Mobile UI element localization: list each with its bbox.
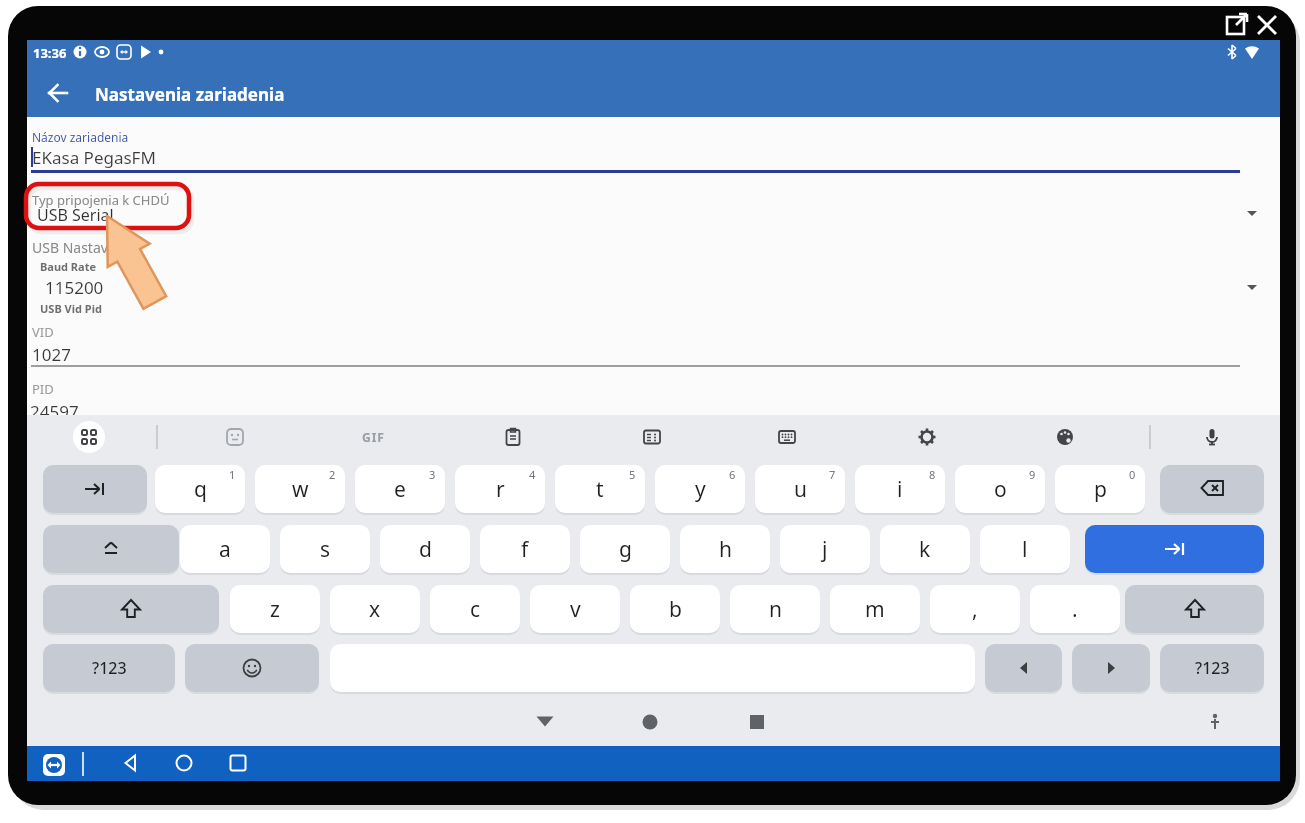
button[interactable]: q (155, 465, 245, 513)
button[interactable]: e (355, 465, 445, 513)
staticText: q (194, 475, 207, 504)
button[interactable]: o (955, 465, 1045, 513)
staticText: ?123 (1195, 657, 1230, 679)
button[interactable] (985, 644, 1062, 692)
staticText: GIF (362, 429, 385, 445)
button[interactable]: ?123 (1160, 644, 1264, 692)
button[interactable]: a (180, 525, 270, 573)
button[interactable] (168, 748, 200, 778)
staticText: c (470, 595, 481, 624)
staticText: . (1072, 595, 1078, 624)
button[interactable]: c (430, 585, 520, 633)
staticText: Typ pripojenia k CHDÚ (32, 191, 170, 209)
button[interactable]: . (1030, 585, 1120, 633)
button[interactable] (1085, 525, 1264, 573)
staticText: o (994, 475, 1007, 504)
staticText: r (496, 475, 505, 504)
staticText: Názov zariadenia (32, 129, 129, 145)
button[interactable]: x (330, 585, 420, 633)
button[interactable] (43, 525, 179, 573)
staticText: i (897, 475, 903, 504)
staticText: 9 (1029, 467, 1036, 482)
button[interactable] (1049, 421, 1081, 453)
staticText: VID (32, 323, 54, 341)
button[interactable]: v (530, 585, 620, 633)
button[interactable] (27, 270, 1253, 310)
staticText: e (394, 475, 406, 504)
staticText: , (972, 595, 978, 624)
button[interactable] (497, 421, 529, 453)
button[interactable]: p (1055, 465, 1145, 513)
button[interactable]: k (880, 525, 970, 573)
staticText: 13:36 (33, 44, 67, 62)
staticText: s (320, 535, 331, 564)
button[interactable]: g (580, 525, 670, 573)
button[interactable] (636, 421, 668, 453)
button[interactable] (27, 190, 1253, 235)
staticText: USB Serial (37, 204, 114, 226)
staticText: v (570, 595, 581, 624)
button[interactable] (73, 421, 105, 453)
staticText: 7 (829, 467, 836, 482)
staticText: 0 (1129, 467, 1136, 482)
staticText: h (719, 535, 732, 564)
button[interactable] (115, 748, 147, 778)
staticText: j (822, 535, 828, 564)
staticText: x (369, 595, 381, 624)
button[interactable]: z (230, 585, 320, 633)
button[interactable] (1125, 585, 1264, 633)
staticText: f (521, 535, 529, 564)
staticText: 4 (529, 467, 536, 482)
button[interactable] (43, 465, 147, 513)
staticText: z (270, 595, 280, 624)
button[interactable]: s (280, 525, 370, 573)
button[interactable]: ?123 (43, 644, 175, 692)
button[interactable] (43, 585, 219, 633)
button[interactable] (222, 748, 254, 778)
button[interactable] (527, 704, 563, 740)
staticText: 2 (329, 467, 336, 482)
staticText: 3 (429, 467, 436, 482)
button[interactable]: d (380, 525, 470, 573)
button[interactable] (185, 644, 319, 692)
staticText: 24597 (30, 400, 79, 423)
button[interactable]: w (255, 465, 345, 513)
staticText: Nastavenia zariadenia (95, 83, 285, 106)
staticText: b (669, 595, 682, 624)
button[interactable]: r (455, 465, 545, 513)
button[interactable] (632, 704, 668, 740)
staticText: Baud Rate (40, 259, 97, 274)
button[interactable] (739, 704, 775, 740)
button[interactable]: l (980, 525, 1070, 573)
staticText: 8 (929, 467, 936, 482)
button[interactable]: i (855, 465, 945, 513)
button[interactable]: y (655, 465, 745, 513)
staticText: EKasa PegasFM (32, 146, 156, 169)
staticText: 5 (629, 467, 636, 482)
button[interactable] (911, 421, 943, 453)
button[interactable]: t (555, 465, 645, 513)
staticText: p (1094, 475, 1107, 504)
button[interactable] (1196, 421, 1228, 453)
button[interactable]: b (630, 585, 720, 633)
button[interactable] (1072, 644, 1150, 692)
button[interactable] (41, 752, 67, 778)
button[interactable]: f (480, 525, 570, 573)
staticText: w (292, 475, 309, 504)
button[interactable] (1197, 704, 1233, 740)
button[interactable]: m (830, 585, 920, 633)
button[interactable] (219, 421, 251, 453)
button[interactable] (45, 80, 71, 106)
button[interactable]: n (730, 585, 820, 633)
staticText: u (794, 475, 807, 504)
button[interactable]: u (755, 465, 845, 513)
staticText: n (769, 595, 782, 624)
button[interactable]: j (780, 525, 870, 573)
staticText: t (596, 475, 604, 504)
staticText: ?123 (92, 657, 127, 679)
button[interactable] (771, 421, 803, 453)
button[interactable] (1160, 465, 1264, 513)
button[interactable]: , (930, 585, 1020, 633)
button[interactable]: h (680, 525, 770, 573)
